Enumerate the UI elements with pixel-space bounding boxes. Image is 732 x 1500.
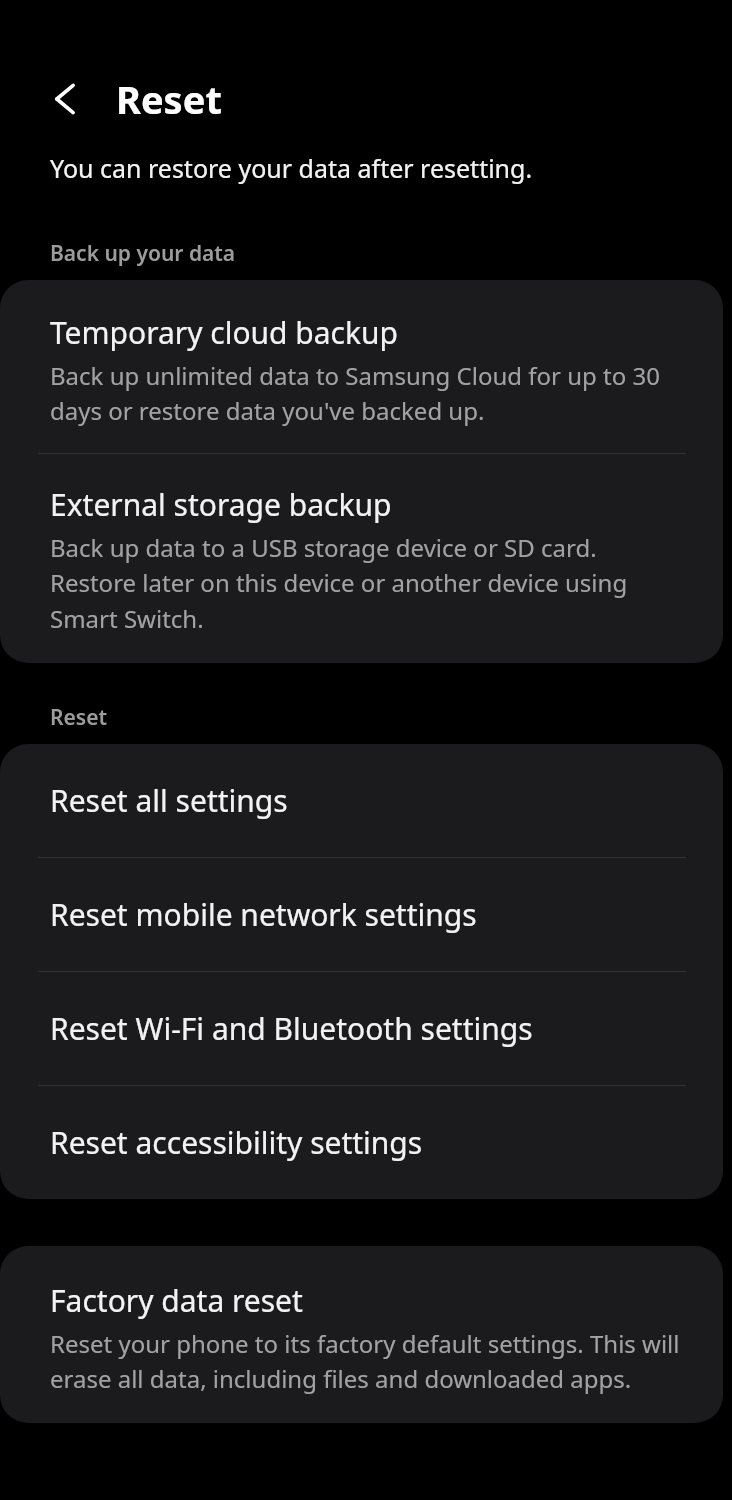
staticText: Factory data reset	[50, 1280, 303, 1321]
staticText: Temporary cloud backup	[50, 312, 399, 353]
button[interactable]: Factory data reset	[0, 1246, 723, 1423]
staticText: Reset Wi-Fi and Bluetooth settings	[50, 1008, 533, 1049]
staticText: Reset	[116, 73, 222, 125]
button[interactable]: Back	[32, 66, 98, 132]
staticText: You can restore your data after resettin…	[50, 151, 533, 185]
staticText: External storage backup	[50, 484, 392, 525]
button[interactable]: Reset accessibility settings	[0, 1086, 723, 1199]
button[interactable]: External storage backup	[0, 454, 723, 663]
staticText: Reset accessibility settings	[50, 1122, 423, 1163]
button[interactable]: Reset Wi-Fi and Bluetooth settings	[0, 972, 723, 1085]
staticText: Back up unlimited data to Samsung Cloud …	[50, 359, 687, 427]
button[interactable]: Temporary cloud backup	[0, 280, 723, 453]
staticText: Back up your data	[50, 239, 732, 268]
staticText: Reset your phone to its factory default …	[50, 1327, 687, 1395]
button[interactable]: Reset all settings	[0, 744, 723, 857]
staticText: Reset mobile network settings	[50, 894, 477, 935]
staticText: Reset all settings	[50, 780, 288, 821]
staticText: Reset	[50, 703, 732, 732]
staticText: Back up data to a USB storage device or …	[50, 531, 687, 635]
button[interactable]: Reset mobile network settings	[0, 858, 723, 971]
